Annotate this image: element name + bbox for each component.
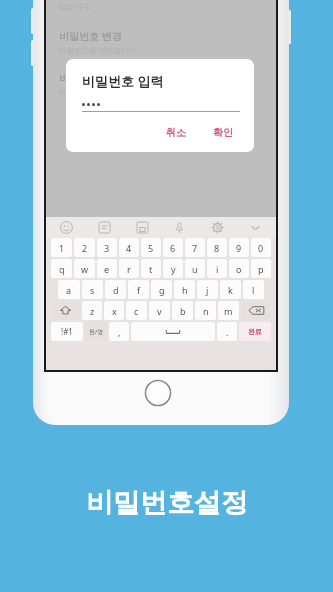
staticText: 1	[59, 242, 65, 254]
button[interactable]: i	[207, 259, 227, 278]
button[interactable]: u	[185, 259, 205, 278]
staticText: s	[90, 284, 95, 296]
button[interactable]: !#1	[51, 322, 83, 341]
staticText: 9	[236, 242, 242, 254]
staticText: 6	[170, 242, 176, 254]
staticText: e	[104, 263, 110, 275]
staticText: j	[206, 284, 209, 296]
staticText: 확인	[213, 126, 233, 139]
staticText: z	[90, 305, 95, 317]
button[interactable]: Voice input	[173, 221, 186, 234]
staticText: m	[224, 305, 233, 317]
button[interactable]: p	[251, 259, 271, 278]
staticText: q	[59, 263, 65, 275]
staticText: k	[228, 284, 233, 296]
button[interactable]: 6	[163, 238, 183, 257]
button[interactable]: 취소	[159, 123, 193, 142]
button[interactable]: 완료	[239, 322, 271, 341]
button[interactable]: Shift	[51, 301, 80, 320]
button[interactable]: f	[128, 280, 149, 299]
staticText: 한/영	[89, 328, 104, 336]
staticText: g	[159, 284, 165, 296]
button[interactable]: 8	[207, 238, 227, 257]
staticText: 비밀번호를 변경합니다.	[59, 87, 138, 97]
staticText: f	[137, 284, 141, 296]
staticText: i	[216, 263, 219, 275]
button[interactable]: h	[174, 280, 195, 299]
staticText: w	[81, 263, 89, 275]
button[interactable]: 한/영	[85, 322, 107, 341]
staticText: 비밀번호를 변경합니다.	[59, 45, 138, 55]
button[interactable]: j	[197, 280, 218, 299]
button[interactable]: ,	[109, 322, 129, 341]
button[interactable]: Home	[145, 380, 171, 406]
staticText: 완료	[248, 327, 262, 336]
button[interactable]: Hide keyboard	[249, 221, 262, 234]
button[interactable]: d	[105, 280, 126, 299]
staticText: ,	[118, 326, 121, 338]
button[interactable]: x	[104, 301, 124, 320]
staticText: l	[252, 284, 255, 296]
button[interactable]: a	[58, 280, 80, 299]
button[interactable]: Clipboard	[136, 221, 149, 234]
button[interactable]: k	[220, 280, 241, 299]
staticText: n	[203, 305, 209, 317]
staticText: b	[180, 305, 186, 317]
button[interactable]: 5	[141, 238, 161, 257]
button[interactable]: 비밀번호 변경	[59, 29, 263, 55]
staticText: v	[157, 305, 162, 317]
staticText: 비밀번호 변경	[59, 71, 122, 85]
button[interactable]: n	[195, 301, 216, 320]
button[interactable]: e	[97, 259, 117, 278]
button[interactable]: 0	[251, 238, 271, 257]
button[interactable]: c	[126, 301, 147, 320]
staticText: c	[134, 305, 139, 317]
staticText: .	[226, 326, 229, 338]
button[interactable]: r	[119, 259, 139, 278]
button[interactable]: 비밀번호 변경	[59, 71, 263, 97]
button[interactable]: Space	[131, 322, 215, 341]
button[interactable]: 3	[97, 238, 117, 257]
staticText: d	[113, 284, 119, 296]
button[interactable]: 2	[74, 238, 95, 257]
button[interactable]: m	[218, 301, 239, 320]
button[interactable]: b	[172, 301, 193, 320]
staticText: 비밀번호설정	[86, 486, 248, 520]
button[interactable]: w	[74, 259, 95, 278]
staticText: 7	[192, 242, 198, 254]
staticText: 0	[258, 242, 264, 254]
staticText: o	[236, 263, 242, 275]
button[interactable]: s	[82, 280, 103, 299]
staticText: t	[149, 263, 153, 275]
button[interactable]: Sticker	[98, 221, 111, 234]
button[interactable]: Settings	[211, 221, 224, 234]
staticText: 3	[104, 242, 110, 254]
button[interactable]: z	[82, 301, 102, 320]
button[interactable]: v	[149, 301, 170, 320]
button[interactable]: y	[163, 259, 183, 278]
button[interactable]: l	[243, 280, 264, 299]
button[interactable]: 1	[51, 238, 72, 257]
button[interactable]: .	[217, 322, 237, 341]
button[interactable]: g	[151, 280, 172, 299]
staticText: r	[127, 263, 131, 275]
button[interactable]: t	[141, 259, 161, 278]
button[interactable]: 4	[119, 238, 139, 257]
staticText: u	[192, 263, 198, 275]
button[interactable]: o	[229, 259, 249, 278]
staticText: h	[182, 284, 188, 296]
staticText: !#1	[61, 326, 73, 337]
staticText: y	[171, 263, 176, 275]
button[interactable]: Backspace	[241, 301, 271, 320]
staticText: p	[258, 263, 264, 275]
button[interactable]: 7	[185, 238, 205, 257]
button[interactable]: 확인	[206, 123, 240, 142]
button[interactable]: q	[51, 259, 72, 278]
staticText: 4	[126, 242, 132, 254]
button[interactable]: 9	[229, 238, 249, 257]
staticText: 8	[214, 242, 220, 254]
button[interactable]: Emoji	[60, 221, 73, 234]
staticText: 2	[82, 242, 88, 254]
